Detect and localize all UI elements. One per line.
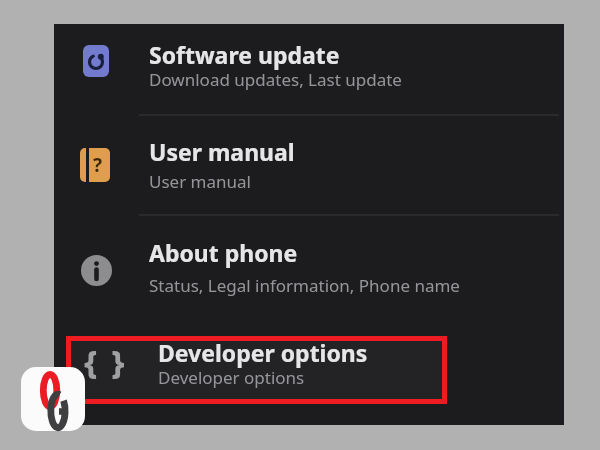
button[interactable] bbox=[54, 216, 564, 316]
button[interactable] bbox=[66, 336, 447, 404]
staticText: User manual bbox=[149, 170, 251, 193]
staticText: About phone bbox=[149, 237, 298, 268]
staticText: Developer options bbox=[158, 337, 368, 368]
staticText: Status, Legal information, Phone name bbox=[149, 274, 460, 297]
staticText: Developer options bbox=[158, 366, 305, 389]
staticText: Software update bbox=[149, 39, 340, 70]
button[interactable] bbox=[54, 24, 564, 115]
staticText: ? bbox=[93, 152, 103, 178]
button[interactable] bbox=[54, 116, 564, 215]
staticText: User manual bbox=[149, 136, 295, 167]
staticText: { } bbox=[84, 340, 128, 384]
staticText: Download updates, Last update bbox=[149, 68, 402, 91]
button[interactable] bbox=[21, 367, 85, 431]
